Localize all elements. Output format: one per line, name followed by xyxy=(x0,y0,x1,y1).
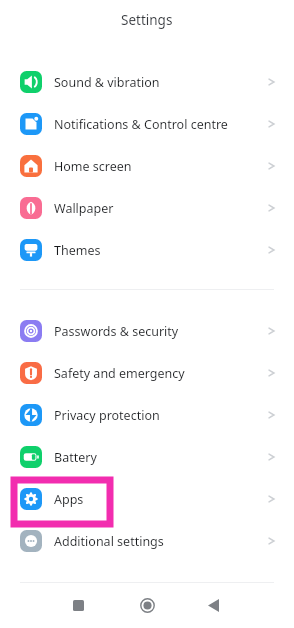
staticText: Sound & vibration xyxy=(54,74,264,91)
staticText: Safety and emergency xyxy=(54,365,264,382)
button[interactable]: Battery xyxy=(0,436,294,478)
button[interactable]: Wallpaper xyxy=(0,187,294,229)
staticText: Battery xyxy=(54,449,264,466)
staticText: Additional settings xyxy=(54,533,264,550)
staticText: Passwords & security xyxy=(54,323,264,340)
staticText: Notifications & Control centre xyxy=(54,116,264,133)
button[interactable]: Themes xyxy=(0,229,294,271)
button[interactable]: Safety and emergency xyxy=(0,352,294,394)
button[interactable]: Home xyxy=(133,591,161,619)
staticText: Apps xyxy=(54,491,264,508)
button[interactable]: Privacy protection xyxy=(0,394,294,436)
button[interactable]: Additional settings xyxy=(0,520,294,562)
staticText: Settings xyxy=(121,11,173,29)
button[interactable]: Back xyxy=(199,591,227,619)
button[interactable]: Home screen xyxy=(0,145,294,187)
button[interactable]: Passwords & security xyxy=(0,310,294,352)
button[interactable]: Recent apps xyxy=(64,591,92,619)
button[interactable]: Notifications & Control centre xyxy=(0,103,294,145)
button[interactable]: Apps xyxy=(0,478,294,520)
staticText: Wallpaper xyxy=(54,200,264,217)
staticText: Themes xyxy=(54,242,264,259)
staticText: Privacy protection xyxy=(54,407,264,424)
staticText: Home screen xyxy=(54,158,264,175)
button[interactable]: Sound & vibration xyxy=(0,61,294,103)
